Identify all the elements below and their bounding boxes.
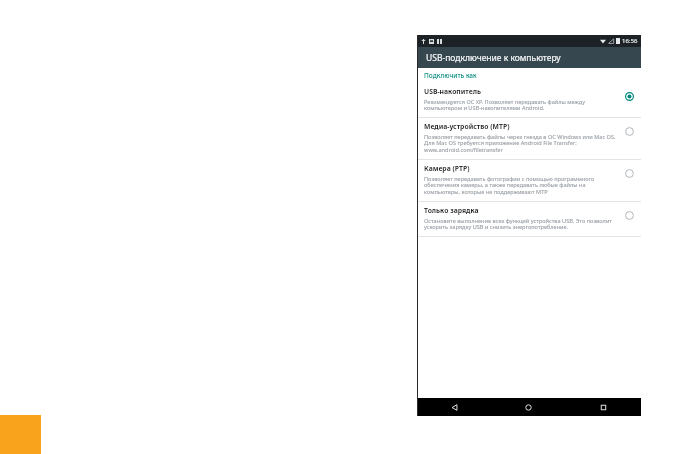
staticText: Позволяет передавать фотографии с помощь… (424, 175, 618, 196)
staticText: Медиа-устройство (MTP) (424, 122, 510, 131)
button[interactable]: Камера (PTP) (417, 160, 641, 201)
button[interactable]: Медиа-устройство (MTP) (417, 118, 641, 159)
button[interactable]: Не выбрано (624, 168, 635, 179)
staticText: Остановите выполнение всех функций устро… (424, 217, 618, 231)
staticText: USB-подключение к компьютеру (426, 52, 561, 64)
button[interactable]: Home (491, 398, 566, 416)
staticText: Камера (PTP) (424, 164, 470, 173)
button[interactable]: USB-накопитель (417, 83, 641, 117)
staticText: 16:56 (622, 37, 638, 45)
button[interactable]: Не выбрано (624, 126, 635, 137)
button[interactable]: USB-подключение к компьютеру (417, 47, 641, 68)
staticText: Рекомендуется ОС XP. Позволяет передават… (424, 98, 618, 112)
button[interactable]: Выбрано (624, 91, 635, 102)
staticText: Позволяет передавать файлы через гнезда … (424, 133, 618, 154)
staticText: USB-накопитель (424, 87, 481, 96)
staticText: Только зарядка (424, 206, 479, 215)
button[interactable]: Не выбрано (624, 210, 635, 221)
button[interactable]: Back (417, 398, 491, 416)
button[interactable]: Только зарядка (417, 202, 641, 236)
button[interactable]: Recent apps (566, 398, 641, 416)
staticText: Подключить как (424, 71, 477, 80)
